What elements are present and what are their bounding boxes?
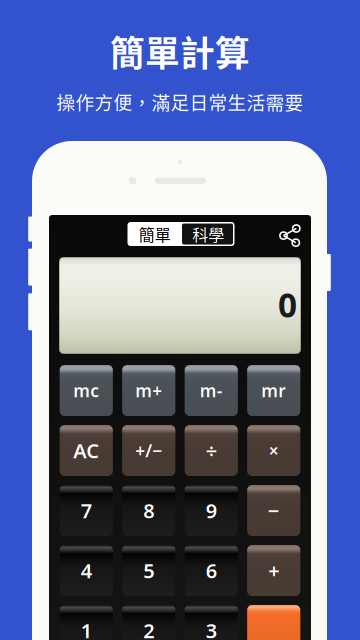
staticText: 簡單 bbox=[139, 222, 171, 246]
staticText: × bbox=[269, 439, 279, 462]
button[interactable]: 8 bbox=[122, 485, 175, 536]
staticText: m- bbox=[200, 379, 223, 402]
staticText: mr bbox=[261, 379, 286, 402]
staticText: m+ bbox=[135, 379, 162, 402]
staticText: 3 bbox=[206, 617, 217, 640]
button[interactable]: 簡單 bbox=[127, 222, 182, 246]
staticText: 操作方便，滿足日常生活需要 bbox=[56, 88, 303, 115]
staticText: + bbox=[268, 557, 279, 584]
button[interactable]: +/− bbox=[122, 425, 175, 476]
staticText: 8 bbox=[143, 497, 154, 524]
staticText: 6 bbox=[206, 557, 217, 584]
staticText: − bbox=[268, 497, 280, 524]
staticText: mc bbox=[73, 379, 99, 402]
staticText: 9 bbox=[206, 497, 217, 524]
button[interactable]: 2 bbox=[122, 605, 175, 640]
button[interactable]: mr bbox=[247, 365, 300, 416]
button[interactable]: 科學 bbox=[182, 222, 234, 246]
staticText: +/− bbox=[135, 439, 162, 462]
button[interactable]: Share bbox=[271, 221, 301, 251]
button[interactable] bbox=[247, 605, 300, 640]
staticText: 0 bbox=[278, 282, 297, 327]
button[interactable]: 3 bbox=[185, 605, 238, 640]
button[interactable]: 9 bbox=[185, 485, 238, 536]
button[interactable]: AC bbox=[60, 425, 113, 476]
staticText: 1 bbox=[81, 617, 92, 640]
staticText: 簡單計算 bbox=[110, 26, 250, 76]
button[interactable]: 6 bbox=[185, 545, 238, 596]
staticText: 2 bbox=[143, 617, 154, 640]
button[interactable]: 7 bbox=[60, 485, 113, 536]
staticText: 4 bbox=[81, 557, 92, 584]
staticText: ÷ bbox=[206, 437, 217, 464]
button[interactable]: 4 bbox=[60, 545, 113, 596]
button[interactable]: 1 bbox=[60, 605, 113, 640]
button[interactable]: m- bbox=[185, 365, 238, 416]
button[interactable]: + bbox=[247, 545, 300, 596]
button[interactable]: − bbox=[247, 485, 300, 536]
button[interactable]: m+ bbox=[122, 365, 175, 416]
staticText: 5 bbox=[143, 557, 154, 584]
staticText: 科學 bbox=[192, 222, 224, 246]
staticText: AC bbox=[73, 437, 99, 464]
staticText: 7 bbox=[81, 497, 92, 524]
button[interactable]: × bbox=[247, 425, 300, 476]
button[interactable]: ÷ bbox=[185, 425, 238, 476]
button[interactable]: 5 bbox=[122, 545, 175, 596]
button[interactable]: mc bbox=[60, 365, 113, 416]
